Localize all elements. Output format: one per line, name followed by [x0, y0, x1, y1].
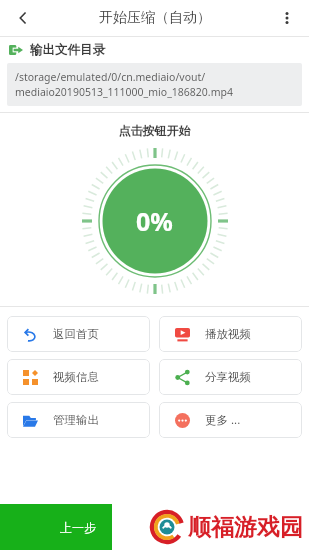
- button[interactable]: 管理输出: [7, 402, 150, 438]
- staticText: 上一步: [60, 520, 96, 535]
- button[interactable]: 视频信息: [7, 359, 150, 395]
- button[interactable]: 分享视频: [159, 359, 302, 395]
- staticText: 管理输出: [53, 413, 99, 427]
- button[interactable]: Back: [6, 1, 40, 35]
- staticText: 点击按钮开始: [0, 123, 309, 138]
- staticText: /storage/emulated/0/cn.mediaio/vout/ med…: [15, 70, 233, 99]
- staticText: 0%: [136, 204, 173, 238]
- staticText: 顺福游戏园: [188, 513, 303, 542]
- staticText: 视频信息: [53, 370, 99, 384]
- button[interactable]: 更多 ...: [159, 402, 302, 438]
- button[interactable]: More options: [271, 2, 303, 34]
- button[interactable]: 播放视频: [159, 316, 302, 352]
- staticText: 播放视频: [205, 327, 251, 341]
- staticText: 输出文件目录: [30, 42, 105, 58]
- staticText: 更多 ...: [205, 412, 241, 428]
- staticText: 分享视频: [205, 370, 251, 384]
- button[interactable]: 上一步: [0, 504, 112, 550]
- staticText: 返回首页: [53, 327, 99, 341]
- staticText: 开始压缩（自动）: [99, 9, 211, 27]
- button[interactable]: 返回首页: [7, 316, 150, 352]
